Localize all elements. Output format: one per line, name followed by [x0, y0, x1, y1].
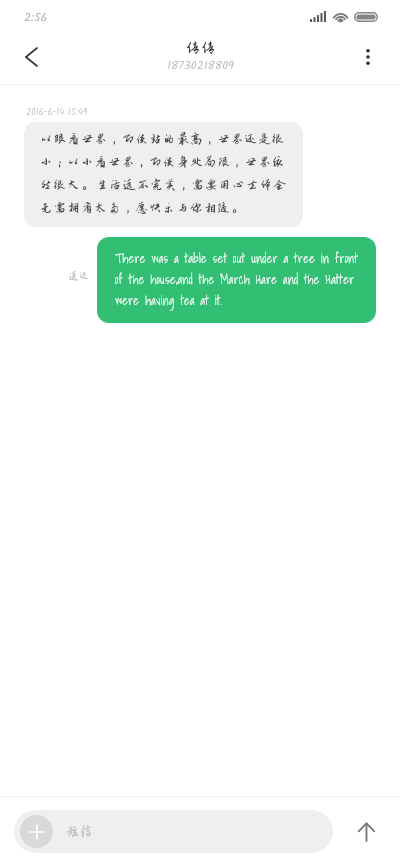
staticText: 以眼看世界，即使站的最高，世界还是很小；以小看世界，即使身处局限，世界依然很大。…	[40, 132, 295, 215]
button[interactable]: More options	[342, 30, 400, 84]
button[interactable]: Back	[0, 30, 64, 84]
button[interactable]: Add attachment	[20, 815, 53, 848]
staticText: 2016-6-14 15:49	[26, 105, 88, 119]
staticText: 2:56	[24, 8, 48, 27]
button[interactable]: There was a table set out under a tree i…	[97, 237, 376, 323]
button[interactable]: 以眼看世界，即使站的最高，世界还是很小；以小看世界，即使身处局限，世界依然很大。…	[24, 122, 303, 227]
staticText: 送达	[69, 270, 89, 281]
button[interactable]: Send	[333, 810, 386, 853]
button[interactable]: Add attachment	[14, 810, 333, 853]
staticText: There was a table set out under a tree i…	[115, 249, 366, 311]
staticText: 倩倩	[185, 39, 216, 56]
staticText: 短信	[66, 824, 94, 839]
staticText: 18730218809	[167, 56, 234, 75]
